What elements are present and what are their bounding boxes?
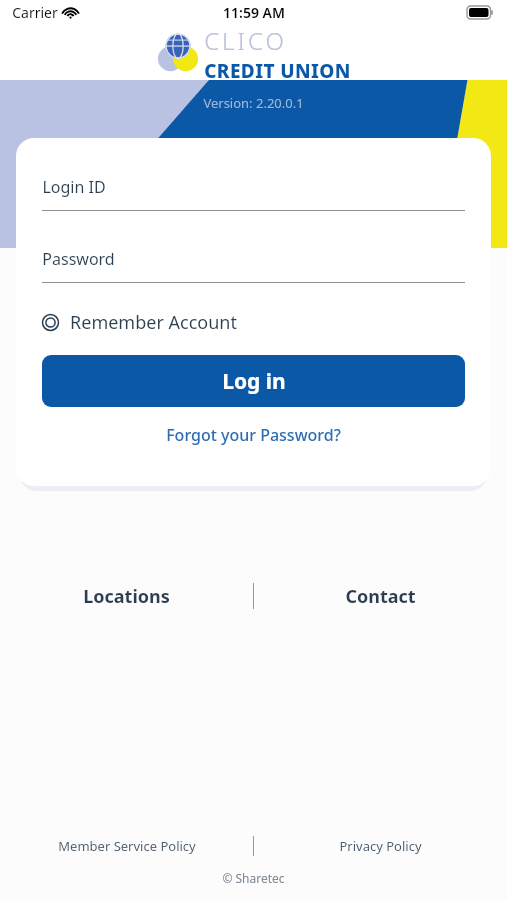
button[interactable]: Privacy Policy xyxy=(254,837,507,855)
button[interactable]: Member Service Policy xyxy=(0,837,253,855)
staticText: Version: 2.20.0.1 xyxy=(203,94,304,112)
button[interactable]: Forgot your Password? xyxy=(42,424,465,446)
staticText: Contact xyxy=(345,584,416,609)
staticText: CREDIT UNION xyxy=(204,58,351,80)
button[interactable]: Locations xyxy=(0,584,253,609)
staticText: Member Service Policy xyxy=(58,837,196,855)
staticText: Forgot your Password? xyxy=(166,424,341,446)
staticText: Locations xyxy=(83,584,170,609)
staticText: © Sharetec xyxy=(222,870,285,886)
staticText: Carrier xyxy=(12,3,58,22)
staticText: CLICO xyxy=(204,24,287,57)
button[interactable]: Login ID xyxy=(42,176,465,211)
staticText: Remember Account xyxy=(70,310,237,335)
button[interactable]: Log in xyxy=(42,355,465,407)
staticText: Privacy Policy xyxy=(339,837,422,855)
staticText: Login ID xyxy=(42,176,106,198)
button[interactable]: Remember Account xyxy=(42,310,465,335)
staticText: 11:59 AM xyxy=(223,3,285,22)
button[interactable]: Password xyxy=(42,248,465,283)
staticText: Password xyxy=(42,248,115,270)
staticText: Log in xyxy=(222,367,286,396)
button[interactable]: Contact xyxy=(254,584,507,609)
